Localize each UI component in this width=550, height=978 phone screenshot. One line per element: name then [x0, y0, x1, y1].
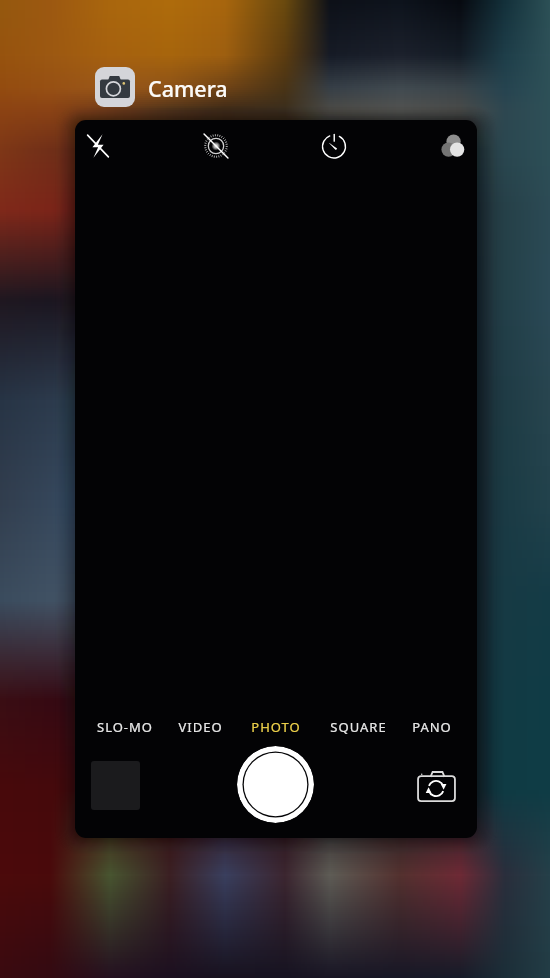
staticText: Camera	[148, 74, 228, 103]
staticText: SLO-MO	[97, 718, 153, 736]
button[interactable]: Timer	[312, 124, 356, 168]
button[interactable]: Camera app icon	[95, 67, 135, 107]
button[interactable]: Switch camera	[416, 767, 457, 808]
button[interactable]: Shutter	[237, 746, 314, 823]
button[interactable]: HDR off	[194, 124, 238, 168]
button[interactable]: SQUARE	[316, 712, 400, 742]
button[interactable]: Filters	[431, 124, 475, 168]
button[interactable]: PHOTO	[234, 712, 318, 742]
staticText: PHOTO	[251, 718, 301, 736]
staticText: SQUARE	[330, 718, 387, 736]
button[interactable]: PANO	[390, 712, 474, 742]
button[interactable]: VIDEO	[158, 712, 242, 742]
button[interactable]: Flash off	[76, 124, 120, 168]
staticText: PANO	[412, 718, 452, 736]
button[interactable]: SLO-MO	[83, 712, 167, 742]
staticText: VIDEO	[178, 718, 223, 736]
